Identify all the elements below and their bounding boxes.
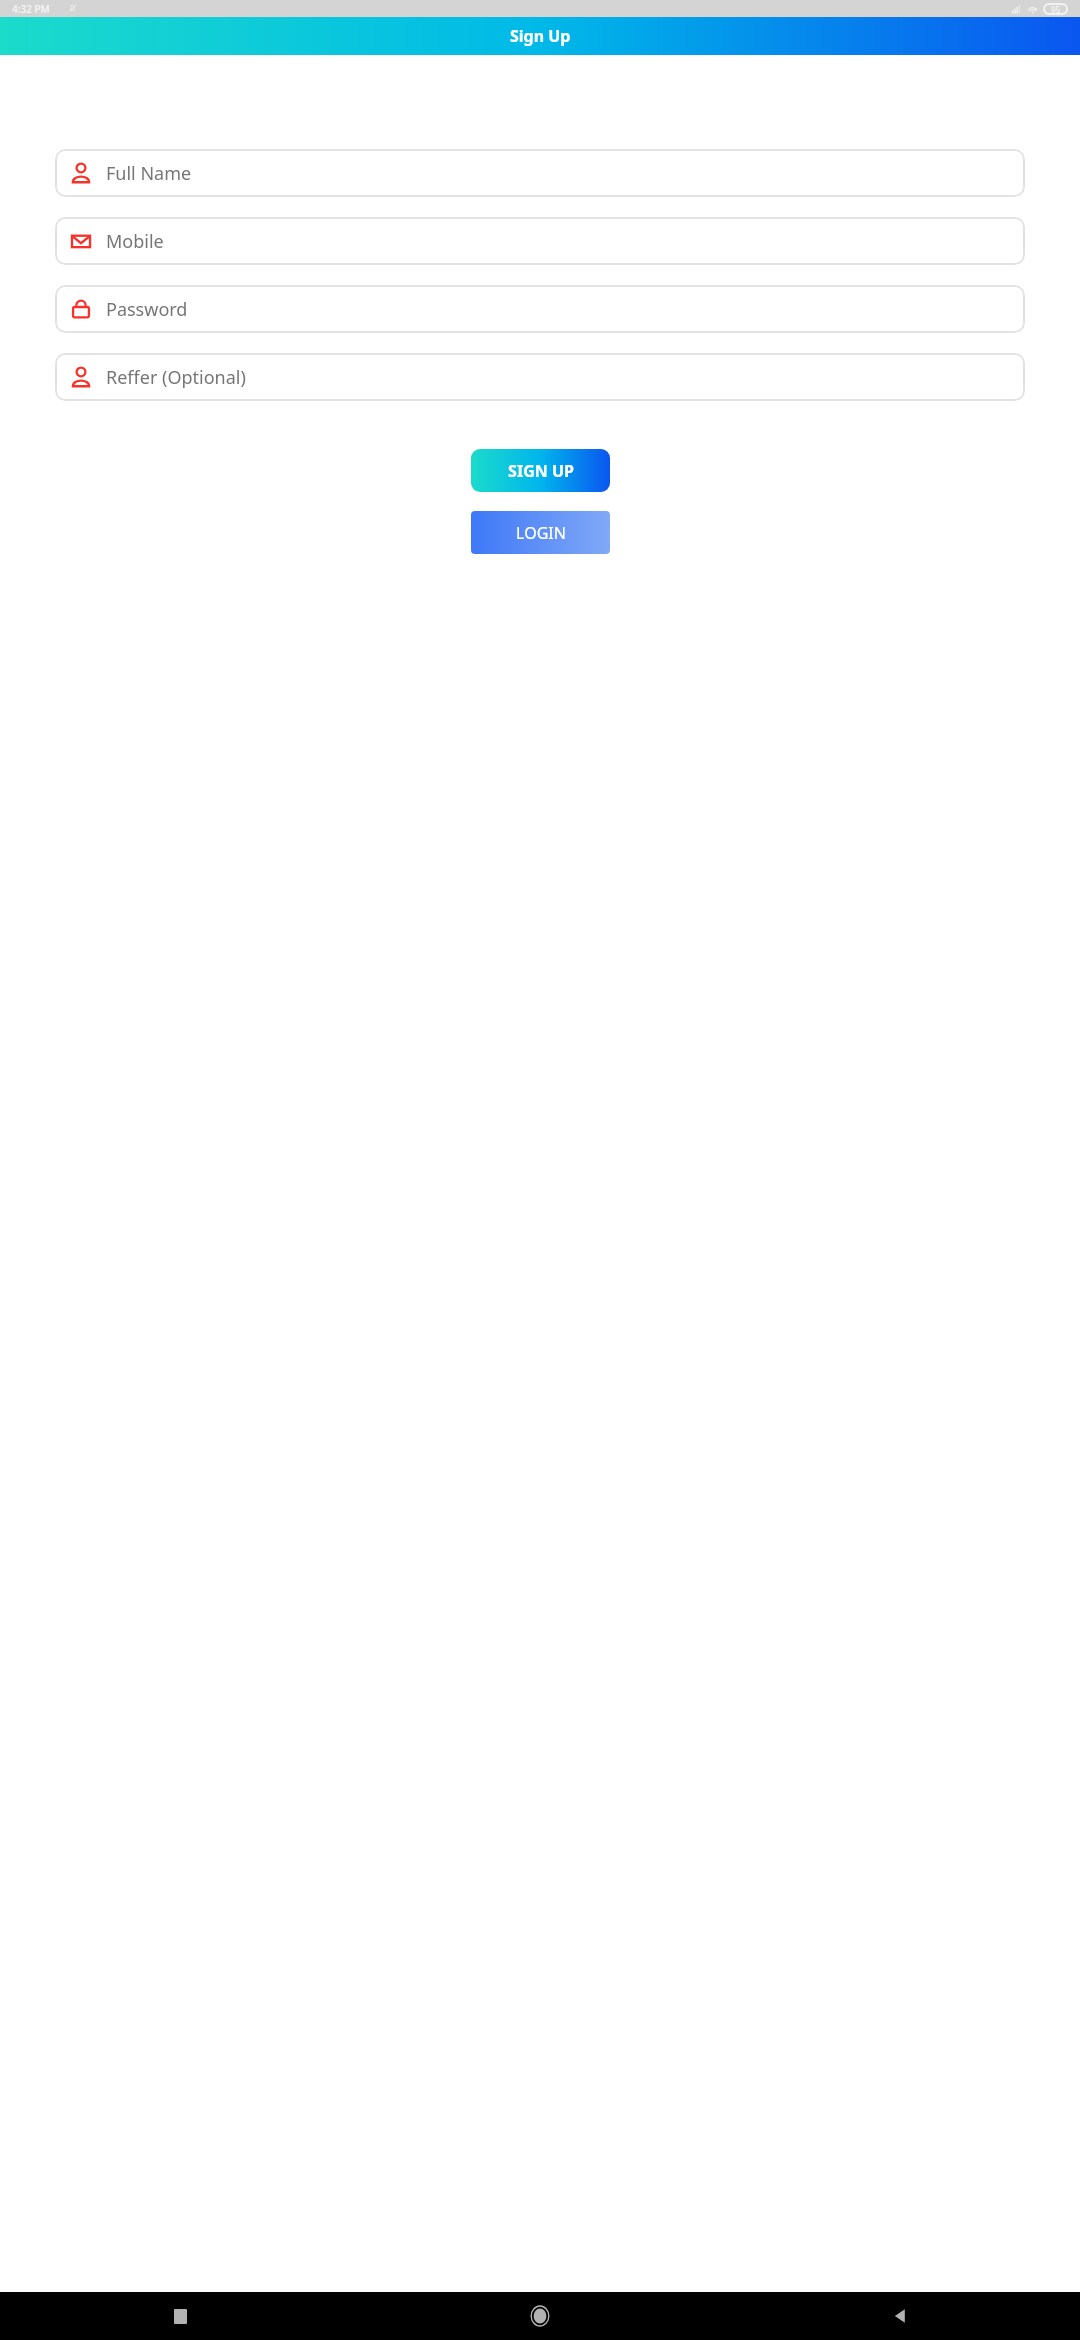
- button[interactable]: Password: [55, 285, 1025, 333]
- button[interactable]: Full Name: [55, 149, 1025, 197]
- staticText: SIGN UP: [508, 460, 574, 482]
- staticText: Password: [106, 297, 188, 322]
- button[interactable]: SIGN UP: [471, 449, 610, 492]
- staticText: LOGIN: [516, 522, 566, 544]
- staticText: 95: [1051, 4, 1061, 15]
- staticText: Reffer (Optional): [106, 365, 246, 390]
- staticText: Mobile: [106, 229, 164, 254]
- staticText: Full Name: [106, 161, 192, 186]
- staticText: Sign Up: [510, 25, 571, 47]
- button[interactable]: Reffer (Optional): [55, 353, 1025, 401]
- button[interactable]: Home: [360, 2292, 720, 2340]
- button[interactable]: LOGIN: [471, 511, 610, 554]
- button[interactable]: Back: [720, 2292, 1080, 2340]
- button[interactable]: Mobile: [55, 217, 1025, 265]
- button[interactable]: Recents: [0, 2292, 360, 2340]
- staticText: 4:32 PM: [12, 2, 50, 16]
